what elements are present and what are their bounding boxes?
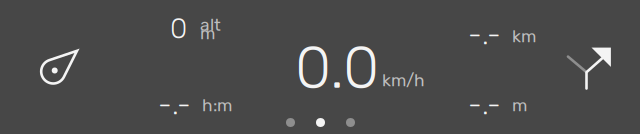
staticText: km [512, 26, 536, 46]
button[interactable]: Heading [26, 40, 82, 96]
staticText: m [512, 95, 527, 115]
staticText: 0 [170, 12, 187, 45]
button[interactable]: Next turn [564, 43, 620, 99]
staticText: -.- [468, 18, 501, 51]
staticText: 0.0 [295, 33, 379, 102]
staticText: km/h [382, 70, 425, 90]
staticText: h:m [202, 95, 232, 115]
staticText: m [200, 23, 215, 43]
staticText: alt [200, 14, 221, 35]
staticText: -.- [158, 88, 191, 121]
staticText: -.- [468, 88, 501, 121]
